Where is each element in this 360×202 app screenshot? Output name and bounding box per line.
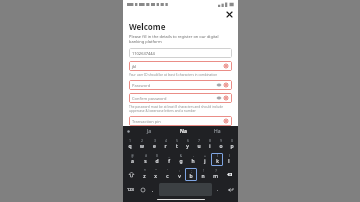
staticText: j: [204, 158, 206, 165]
button[interactable]: 6: [182, 138, 193, 151]
button[interactable]: Enter: [223, 183, 237, 196]
staticText: 2: [141, 139, 143, 143]
button[interactable]: Shift: [124, 168, 139, 181]
staticText: ': [167, 169, 168, 173]
staticText: ;: [191, 169, 192, 173]
button[interactable]: 3: [148, 138, 160, 151]
button[interactable]: 5: [171, 138, 182, 151]
staticText: Ja: [147, 128, 152, 135]
button[interactable]: !: [197, 168, 209, 181]
button[interactable]: ): [223, 153, 235, 166]
staticText: b: [189, 173, 193, 180]
staticText: Password: [132, 83, 216, 88]
button[interactable]: 4: [160, 138, 171, 151]
staticText: h: [191, 158, 195, 165]
staticText: c: [166, 173, 169, 180]
staticText: t: [176, 143, 178, 150]
staticText: 7: [198, 139, 200, 143]
button[interactable]: +: [199, 153, 211, 166]
button[interactable]: 2: [136, 138, 148, 151]
button[interactable]: Password: [129, 80, 232, 90]
staticText: u: [197, 143, 201, 150]
button[interactable]: *: [139, 168, 150, 181]
staticText: i: [209, 143, 211, 150]
button[interactable]: 1: [124, 138, 136, 151]
staticText: Please fill in the details to register o…: [129, 34, 219, 44]
button[interactable]: &: [175, 153, 187, 166]
staticText: f: [168, 158, 170, 165]
button[interactable]: Show password: [216, 95, 222, 101]
button[interactable]: _: [163, 153, 175, 166]
button[interactable]: 0: [226, 138, 237, 151]
staticText: ,: [152, 187, 154, 192]
staticText: q: [128, 143, 132, 150]
staticText: Ha: [214, 128, 221, 135]
button[interactable]: Na: [166, 126, 200, 137]
staticText: 5: [176, 139, 178, 143]
staticText: 6: [187, 139, 189, 143]
button[interactable]: Confirm password: [129, 93, 232, 103]
staticText: &: [180, 154, 182, 158]
button[interactable]: ': [161, 168, 173, 181]
staticText: _: [168, 154, 170, 158]
button[interactable]: Emoji: [137, 183, 148, 196]
staticText: Na: [180, 128, 187, 135]
button[interactable]: 123: [124, 183, 137, 196]
staticText: Your user ID should be at least 6 charac…: [129, 73, 218, 77]
staticText: The password must be at least 8 characte…: [129, 105, 223, 113]
staticText: Welcome: [129, 21, 166, 32]
staticText: ): [229, 154, 230, 158]
button[interactable]: Show password: [216, 82, 222, 88]
button[interactable]: Backspace: [221, 168, 237, 181]
button[interactable]: jkl: [129, 61, 232, 71]
staticText: n: [201, 173, 205, 180]
button[interactable]: ": [150, 168, 161, 181]
staticText: p: [230, 143, 234, 150]
button[interactable]: :: [173, 168, 185, 181]
button[interactable]: $: [151, 153, 163, 166]
staticText: $: [156, 154, 158, 158]
staticText: g: [179, 158, 183, 165]
staticText: k: [216, 158, 219, 165]
button[interactable]: Transaction pin: [129, 116, 232, 126]
button[interactable]: 8: [204, 138, 215, 151]
staticText: e: [153, 143, 156, 150]
staticText: +: [204, 154, 206, 158]
button[interactable]: ,: [148, 183, 158, 196]
button[interactable]: Close: [225, 10, 234, 19]
staticText: 1102637444: [132, 51, 229, 56]
staticText: *: [144, 169, 146, 173]
button[interactable]: Voice input: [123, 126, 133, 137]
staticText: m: [213, 173, 218, 180]
staticText: z: [143, 173, 146, 180]
button[interactable]: -: [187, 153, 199, 166]
staticText: 9: [220, 139, 222, 143]
staticText: Confirm password: [132, 96, 216, 101]
staticText: o: [219, 143, 223, 150]
button[interactable]: Ja: [133, 126, 166, 137]
staticText: :: [179, 169, 180, 173]
button[interactable]: #: [139, 153, 151, 166]
staticText: ": [155, 169, 157, 173]
button[interactable]: 1102637444: [129, 48, 232, 58]
button[interactable]: 7: [193, 138, 204, 151]
button[interactable]: Ha: [200, 126, 234, 137]
button[interactable]: ?: [209, 168, 221, 181]
staticText: 8: [209, 139, 211, 143]
staticText: 4: [165, 139, 167, 143]
staticText: .: [217, 187, 219, 192]
staticText: @: [131, 154, 134, 158]
button[interactable]: 9: [215, 138, 226, 151]
staticText: 3: [154, 139, 156, 143]
button[interactable]: .: [213, 183, 223, 196]
staticText: #: [145, 154, 147, 158]
button[interactable]: (: [211, 153, 223, 166]
staticText: w: [140, 143, 144, 150]
staticText: r: [164, 143, 167, 150]
staticText: s: [144, 158, 147, 165]
staticText: (: [217, 154, 218, 158]
staticText: !: [203, 169, 204, 173]
button[interactable]: ;: [185, 168, 197, 181]
button[interactable]: @: [126, 153, 139, 166]
